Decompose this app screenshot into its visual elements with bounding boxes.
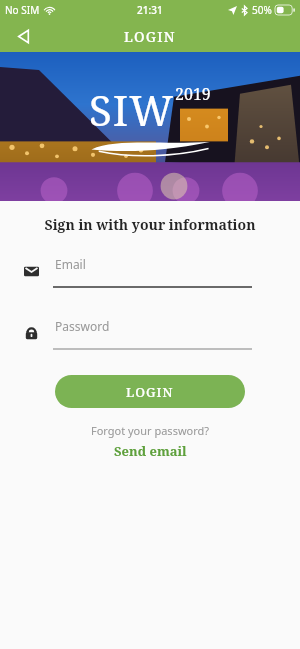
button[interactable]: Send email — [108, 441, 193, 461]
staticText: 2019 — [175, 83, 211, 105]
staticText: No SIM — [5, 3, 40, 17]
staticText: Forgot your password? — [0, 423, 300, 438]
staticText: Password — [55, 318, 110, 334]
staticText: 50% — [252, 3, 272, 17]
staticText: LOGIN — [126, 383, 174, 401]
staticText: Sign in with your information — [0, 215, 300, 234]
staticText: Email — [55, 256, 86, 272]
button[interactable]: LOGIN — [55, 375, 245, 408]
staticText: SIW — [89, 81, 175, 138]
staticText: 21:31 — [137, 3, 163, 17]
staticText: Send email — [114, 442, 187, 460]
button[interactable]: Email — [0, 254, 300, 288]
button[interactable]: Password — [0, 316, 300, 350]
button[interactable]: Back — [8, 21, 38, 51]
staticText: LOGIN — [124, 27, 176, 46]
